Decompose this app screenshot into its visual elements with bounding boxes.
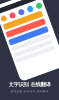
- staticText: 文字识别 在线翻译: [8, 81, 50, 88]
- staticText: 拍照识图 语音转写 实时翻译: [10, 90, 48, 93]
